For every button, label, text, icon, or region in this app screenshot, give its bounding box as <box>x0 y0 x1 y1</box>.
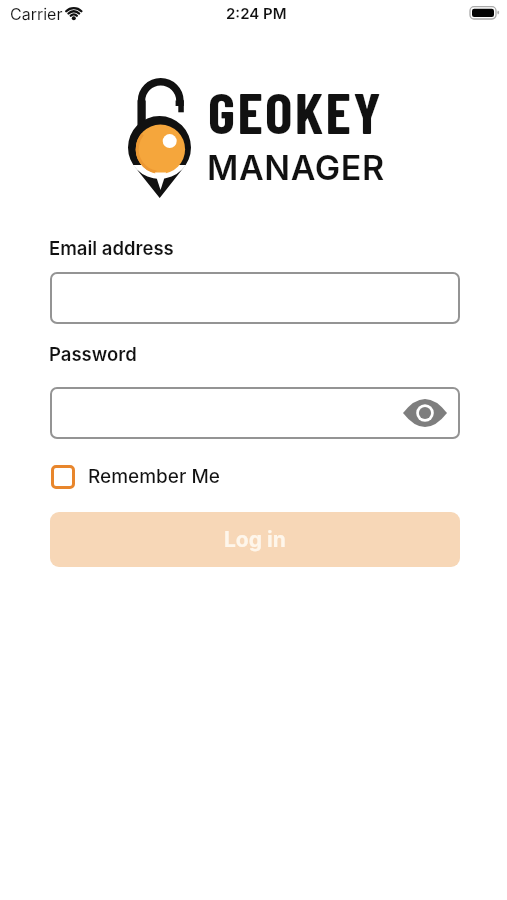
staticText: Email address <box>49 237 174 259</box>
button[interactable]: Remember Me <box>51 465 220 489</box>
staticText: Password <box>49 343 137 365</box>
staticText: MANAGER <box>207 147 385 188</box>
staticText: GEOKEY <box>208 76 384 146</box>
staticText: Log in <box>224 527 286 552</box>
staticText: 2:24 PM <box>226 4 287 22</box>
staticText: Carrier <box>10 4 63 23</box>
staticText: Remember Me <box>88 465 220 488</box>
button[interactable] <box>402 397 448 429</box>
button[interactable] <box>50 387 460 439</box>
button[interactable]: Log in <box>50 512 460 567</box>
button[interactable] <box>50 272 460 324</box>
